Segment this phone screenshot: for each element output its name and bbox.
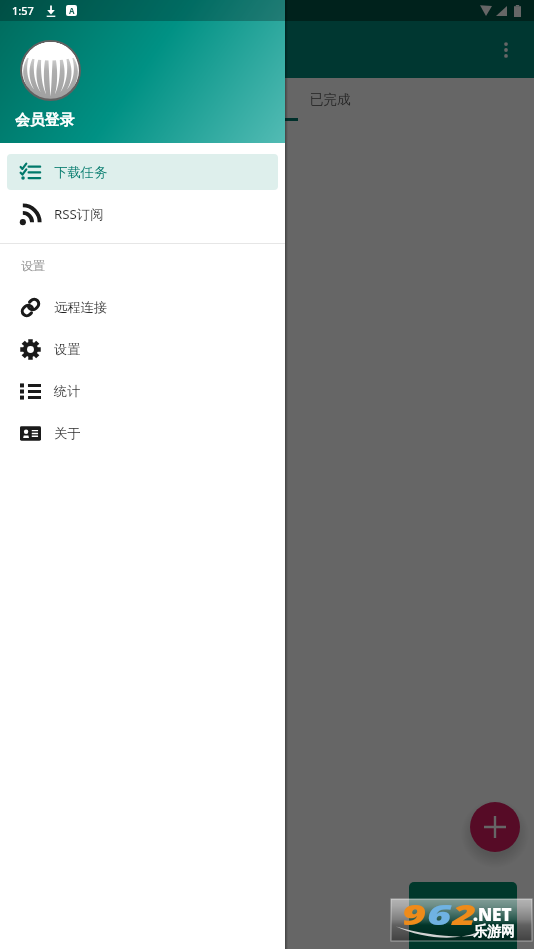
staticText: A [69, 5, 75, 16]
staticText: .NET [473, 903, 512, 926]
staticText: 6 [427, 895, 452, 933]
staticText: RSS订阅 [54, 205, 104, 223]
button[interactable]: More options [487, 31, 525, 69]
button[interactable]: 会员登录 [0, 0, 285, 143]
staticText: 乐游网 [473, 923, 515, 941]
staticText: 关于 [54, 425, 81, 442]
staticText: 会员登录 [15, 111, 75, 130]
staticText: 统计 [54, 383, 81, 400]
button[interactable]: 下载任务 [7, 154, 278, 190]
staticText: 下载任务 [54, 164, 108, 181]
staticText: 正在下载 [132, 91, 186, 108]
button[interactable]: 远程连接 [7, 289, 278, 325]
staticText: 设置 [21, 258, 45, 273]
staticText: 远程连接 [54, 299, 108, 316]
staticText: 已完成 [310, 91, 351, 108]
staticText: 设置 [54, 341, 81, 358]
staticText: 1:57 [12, 3, 34, 18]
staticText: 2 [452, 895, 477, 933]
button[interactable]: 关于 [7, 415, 278, 451]
button[interactable]: 统计 [7, 373, 278, 409]
staticText: 9 [402, 895, 427, 933]
button[interactable]: 已完成 [298, 78, 362, 121]
button[interactable]: 正在下载 [20, 78, 298, 121]
button[interactable]: Add download [470, 802, 520, 852]
button[interactable]: RSS订阅 [7, 196, 278, 232]
button[interactable]: 设置 [7, 331, 278, 367]
